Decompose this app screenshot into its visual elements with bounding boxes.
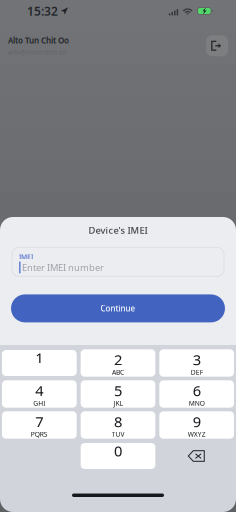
staticText: Device's IMEI: [88, 224, 147, 236]
staticText: Alto Tun Chit Oo: [8, 35, 69, 46]
button[interactable]: 7: [2, 412, 77, 438]
staticText: 4: [35, 381, 43, 400]
staticText: 7: [35, 412, 43, 431]
staticText: alto@innorithm.co: [8, 48, 66, 56]
staticText: 6: [193, 381, 201, 400]
button[interactable]: Delete: [159, 443, 234, 469]
staticText: 1: [35, 348, 43, 367]
staticText: Continue: [100, 303, 135, 314]
staticText: JKL: [113, 399, 122, 408]
button[interactable]: Log out: [206, 35, 228, 56]
button[interactable]: 1: [2, 350, 77, 376]
staticText: DEF: [191, 368, 203, 377]
staticText: 5: [114, 381, 122, 400]
staticText: MNO: [189, 399, 205, 408]
button[interactable]: 6: [159, 381, 234, 407]
button[interactable]: 0: [81, 443, 155, 469]
button[interactable]: 3: [159, 350, 234, 376]
staticText: 9: [193, 412, 201, 431]
staticText: 2: [114, 350, 122, 369]
staticText: GHI: [33, 399, 45, 408]
staticText: WXYZ: [188, 430, 206, 439]
staticText: 0: [114, 441, 122, 460]
button[interactable]: 4: [2, 381, 77, 407]
staticText: 3: [193, 350, 201, 369]
staticText: Enter IMEI number: [22, 261, 104, 274]
button[interactable]: Continue: [11, 294, 225, 322]
button[interactable]: 2: [81, 350, 155, 376]
staticText: TUV: [111, 430, 124, 439]
button[interactable]: 5: [81, 381, 155, 407]
staticText: IMEI: [19, 252, 33, 261]
button[interactable]: 9: [159, 412, 234, 438]
staticText: 15:32: [27, 3, 58, 19]
staticText: 8: [114, 412, 122, 431]
staticText: PQRS: [31, 430, 48, 439]
staticText: ABC: [112, 368, 124, 377]
button[interactable]: 8: [81, 412, 155, 438]
